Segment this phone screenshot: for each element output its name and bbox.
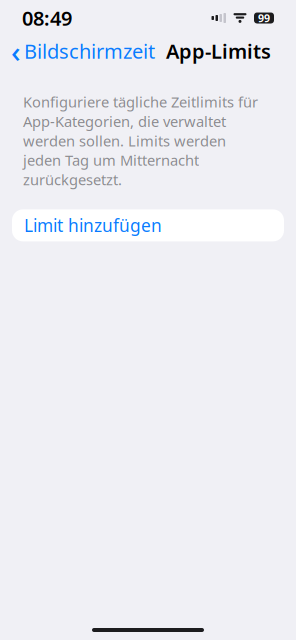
staticText: ‹ (11, 31, 21, 70)
button[interactable]: Limit hinzufügen (12, 209, 284, 241)
staticText: Limit hinzufügen (24, 214, 162, 237)
staticText: Konfiguriere tägliche Zeitlimits für App… (23, 92, 258, 189)
staticText: 99 (258, 11, 270, 25)
staticText: App-Limits (166, 38, 271, 64)
button[interactable]: ‹ (11, 27, 155, 74)
staticText: Bildschirmzeit (24, 38, 155, 64)
staticText: 08:49 (22, 5, 72, 31)
